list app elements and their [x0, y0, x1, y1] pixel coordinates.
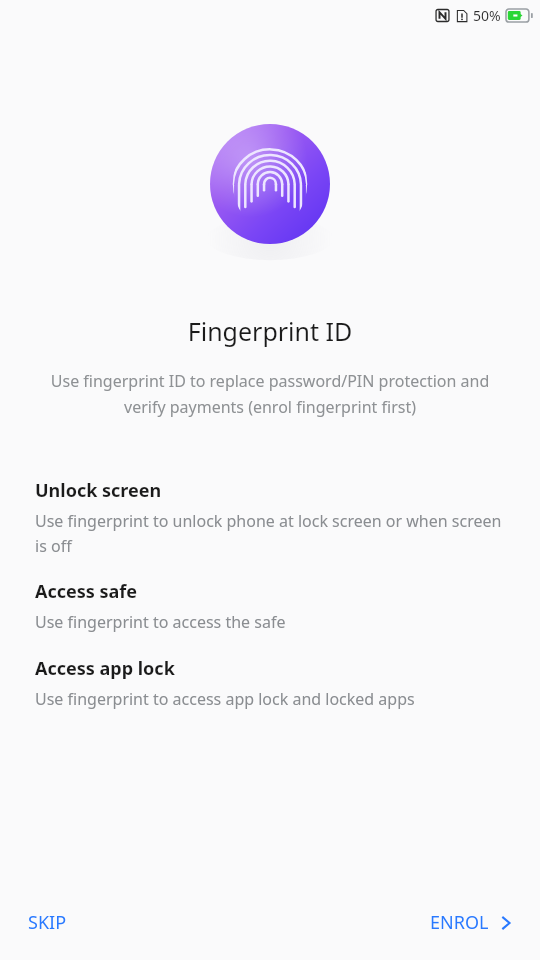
button[interactable]: Unlock screen [0, 478, 540, 556]
staticText: Unlock screen [35, 478, 162, 503]
button[interactable]: SKIP [16, 900, 79, 945]
staticText: ENROL [430, 910, 489, 935]
staticText: Use fingerprint ID to replace password/P… [33, 370, 507, 418]
staticText: Use fingerprint to access app lock and l… [35, 688, 415, 710]
staticText: Fingerprint ID [0, 314, 540, 348]
button[interactable]: ENROL [420, 900, 524, 945]
staticText: Use fingerprint to access the safe [35, 611, 286, 633]
button[interactable]: Access app lock [0, 656, 540, 710]
staticText: 50% [473, 6, 501, 25]
staticText: Use fingerprint to unlock phone at lock … [35, 510, 505, 556]
staticText: Access safe [35, 579, 138, 604]
other: Enrol [498, 915, 514, 931]
staticText: Access app lock [35, 656, 175, 681]
staticText: SKIP [28, 910, 67, 935]
button[interactable]: Access safe [0, 579, 540, 633]
